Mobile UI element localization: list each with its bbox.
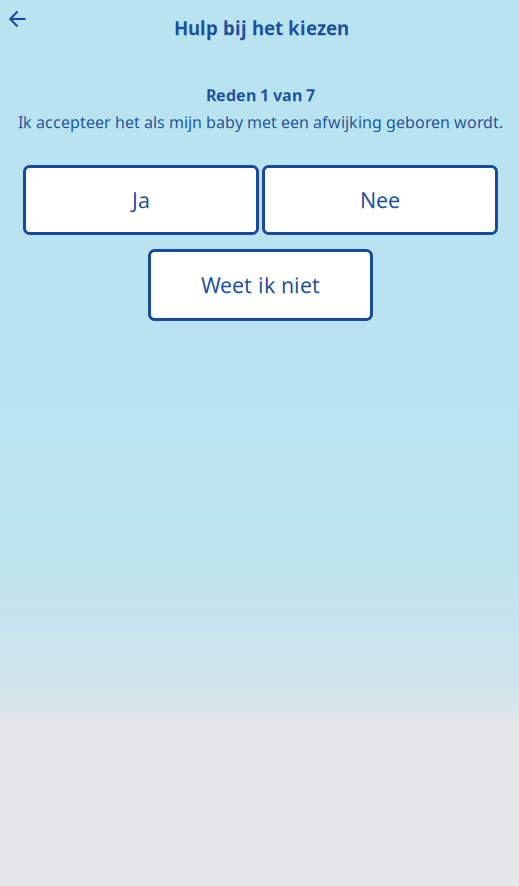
button[interactable]: Ja bbox=[23, 165, 259, 235]
staticText: Nee bbox=[360, 186, 400, 214]
staticText: Hulp bij het kiezen bbox=[174, 16, 349, 40]
staticText: Weet ik niet bbox=[201, 271, 320, 299]
button[interactable]: Back bbox=[0, 0, 40, 38]
button[interactable]: Nee bbox=[262, 165, 498, 235]
button[interactable]: Weet ik niet bbox=[148, 249, 373, 321]
staticText: Ik accepteer het als mijn baby met een a… bbox=[18, 111, 503, 133]
staticText: Reden 1 van 7 bbox=[206, 84, 315, 106]
staticText: Ja bbox=[132, 186, 150, 214]
